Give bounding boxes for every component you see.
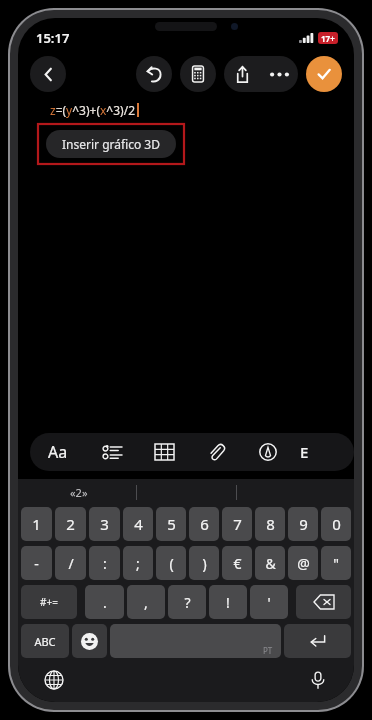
staticText: 1 [32,514,41,534]
button[interactable]: Emoji [72,624,107,658]
button[interactable]: ! [209,585,247,619]
button[interactable]: Aa [30,433,86,471]
button[interactable]: " [321,546,351,580]
button[interactable]: 8 [255,507,285,541]
button[interactable]: : [89,546,120,580]
button[interactable]: - [21,546,52,580]
button[interactable]: ? [168,585,206,619]
button[interactable]: #+= [21,585,77,619]
staticText: #+= [40,595,58,609]
button[interactable]: 5 [156,507,186,541]
button[interactable]: Share [224,56,298,92]
staticText: ( [169,554,174,573]
button[interactable]: More options [260,56,298,92]
staticText: 17+ [321,33,335,44]
staticText: z=(y^3)+(x^3)/2 [50,102,136,118]
staticText: PT [263,645,273,656]
button[interactable]: & [255,546,285,580]
button[interactable]: Lists [86,433,138,471]
staticText: 3 [100,514,109,534]
staticText: 7 [233,514,242,534]
button[interactable]: ; [123,546,153,580]
staticText: " [333,554,339,573]
button[interactable]: , [127,585,165,619]
button[interactable]: Done [306,56,342,92]
button[interactable]: 4 [123,507,153,541]
staticText: ABC [34,634,56,649]
staticText: ! [226,593,230,612]
button[interactable]: Enter [284,624,351,658]
staticText: / [68,554,74,573]
staticText: 9 [299,514,308,534]
staticText: ) [202,554,207,573]
button[interactable]: ' [250,585,288,619]
staticText: E [300,442,309,462]
button[interactable]: Backspace [296,585,351,619]
button[interactable]: Space [110,624,281,658]
button[interactable]: Back [30,56,66,92]
staticText: - [34,554,39,573]
button[interactable]: @ [288,546,318,580]
staticText: . [103,593,107,612]
button[interactable]: 7 [222,507,252,541]
button[interactable]: 1 [21,507,52,541]
staticText: «2» [70,485,88,500]
button[interactable]: / [55,546,86,580]
button[interactable]: . [85,585,124,619]
button[interactable]: Voice input [304,666,332,694]
staticText: @ [297,554,310,573]
staticText: Inserir gráfico 3D [62,136,160,152]
staticText: : [103,554,107,573]
staticText: 4 [134,514,143,534]
button[interactable]: Change keyboard language [40,666,68,694]
staticText: ; [136,554,140,573]
staticText: 8 [266,514,275,534]
staticText: € [233,554,242,573]
button[interactable]: Share [224,56,260,92]
staticText: Aa [48,441,68,463]
button[interactable]: Inserir gráfico 3D [46,130,176,158]
button[interactable]: ( [156,546,186,580]
staticText: 6 [200,514,209,534]
staticText: 5 [167,514,176,534]
button[interactable]: 9 [288,507,318,541]
staticText: 15:17 [36,29,70,47]
button[interactable]: ) [189,546,219,580]
button[interactable]: Calculator [180,56,216,92]
button[interactable]: 2 [55,507,86,541]
staticText: ? [184,593,191,612]
button[interactable]: 0 [321,507,351,541]
staticText: 0 [332,514,341,534]
button[interactable]: 3 [89,507,120,541]
button[interactable]: € [222,546,252,580]
button[interactable]: Undo [136,56,172,92]
button[interactable]: Draw [242,433,294,471]
button[interactable]: ABC [21,624,69,658]
staticText: , [144,593,148,612]
button[interactable]: Attach [190,433,242,471]
button[interactable]: Table [138,433,190,471]
staticText: & [265,554,276,573]
button[interactable]: 6 [189,507,219,541]
button[interactable]: E [294,433,354,471]
staticText: ' [267,593,271,612]
staticText: 2 [66,514,75,534]
